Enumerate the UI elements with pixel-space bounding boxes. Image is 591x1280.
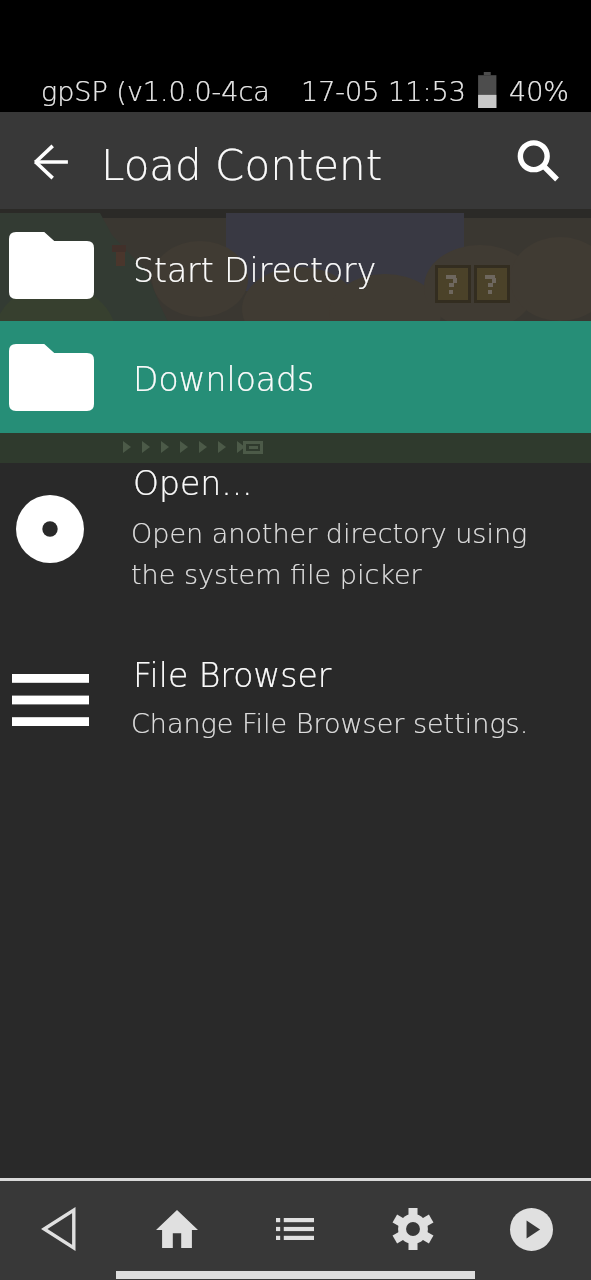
staticText: 40% [509,76,570,107]
button[interactable]: Settings [354,1185,472,1273]
button[interactable]: Resume [472,1185,590,1273]
button[interactable]: Open... [0,463,591,608]
staticText: Change File Browser settings. [131,708,529,739]
staticText: gpSP (v1.0.0-4ca [41,76,270,107]
button[interactable]: File Browser [0,655,591,755]
staticText: File Browser [133,656,332,694]
button[interactable]: Start Directory [0,209,591,321]
staticText: Open... [133,464,253,502]
button[interactable]: Downloads [0,321,591,433]
button[interactable]: Back [0,1185,118,1273]
staticText: 17-05 11:53 [301,76,466,107]
button[interactable]: Search [507,131,572,196]
staticText: Open another directory using the system … [131,518,528,590]
staticText: Downloads [133,360,315,398]
button[interactable]: Playlists [236,1185,354,1273]
button[interactable]: Back [20,128,85,193]
staticText: Load Content [101,141,383,190]
staticText: Start Directory [133,251,377,289]
button[interactable]: Home [118,1185,236,1273]
